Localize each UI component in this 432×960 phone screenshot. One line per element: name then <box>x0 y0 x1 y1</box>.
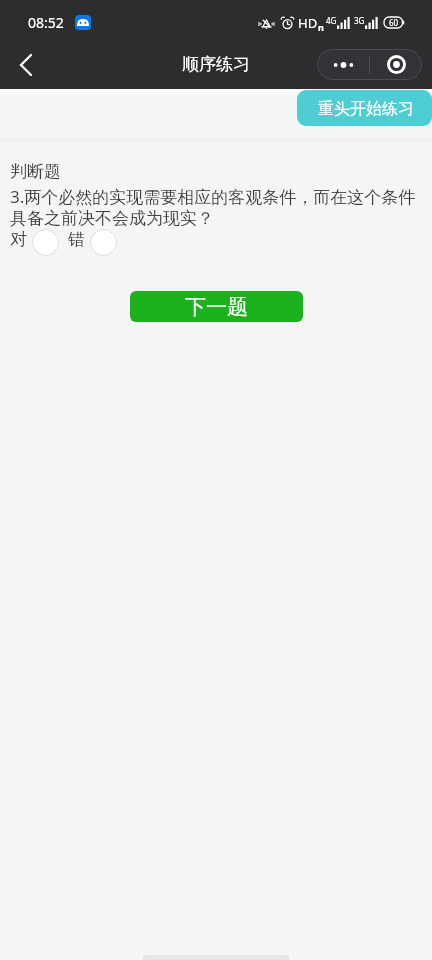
staticText: 顺序练习 <box>182 54 250 75</box>
button[interactable]: 重头开始练习 <box>297 90 432 126</box>
staticText: 08:52 <box>28 13 64 32</box>
staticText: 3G <box>354 15 365 26</box>
staticText: 3.两个必然的实现需要相应的客观条件，而在这个条件具备之前决不会成为现实？ <box>10 185 420 229</box>
button[interactable]: Back <box>4 43 48 87</box>
staticText: 60 <box>389 17 399 28</box>
staticText: 错 <box>68 229 85 250</box>
button[interactable]: Option <box>90 229 117 256</box>
staticText: 重头开始练习 <box>318 99 414 119</box>
button[interactable]: More options <box>317 49 369 80</box>
staticText: n <box>318 21 324 33</box>
staticText: 4G <box>326 15 337 26</box>
staticText: 下一题 <box>185 294 248 320</box>
staticText: 判断题 <box>10 161 61 182</box>
staticText: 对 <box>10 229 27 250</box>
button[interactable]: Option <box>32 229 59 256</box>
button[interactable]: Close <box>370 49 422 80</box>
button[interactable]: 下一题 <box>130 291 303 322</box>
staticText: HD <box>298 14 318 32</box>
